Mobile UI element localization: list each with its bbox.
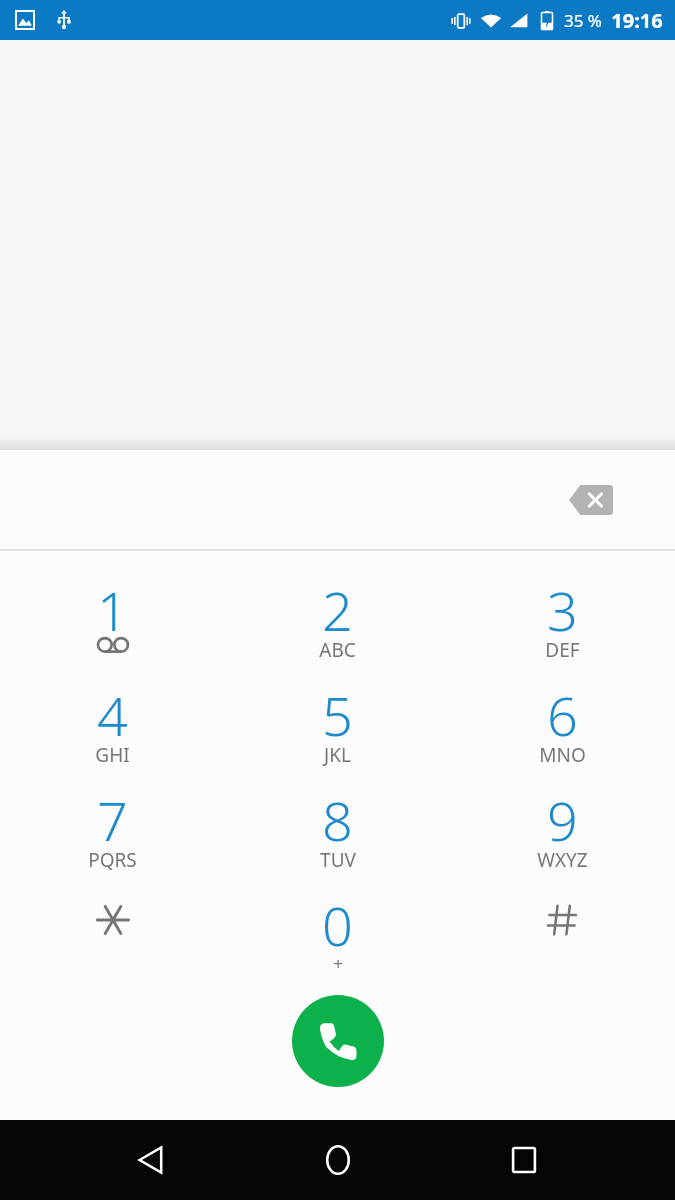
button[interactable]: Home	[302, 1124, 374, 1196]
staticText: MNO	[539, 742, 586, 768]
staticText: TUV	[320, 847, 356, 873]
button[interactable]: 4	[0, 678, 225, 783]
button[interactable]: 1	[0, 573, 225, 678]
staticText: 2	[322, 573, 353, 637]
button[interactable]: 9	[450, 783, 675, 888]
button[interactable]: 7	[0, 783, 225, 888]
staticText: 19:16	[611, 7, 663, 34]
staticText: 0	[322, 888, 353, 952]
button[interactable]: Call	[292, 995, 384, 1087]
staticText: DEF	[545, 637, 580, 663]
staticText: JKL	[324, 742, 351, 768]
staticText: 4	[97, 678, 128, 742]
staticText: +	[333, 952, 343, 975]
staticText: WXYZ	[537, 847, 588, 873]
staticText: 3	[547, 573, 578, 637]
staticText: 35 %	[564, 9, 602, 32]
button[interactable]: Back	[115, 1124, 187, 1196]
button[interactable]	[0, 888, 225, 993]
staticText: 7	[97, 783, 128, 847]
button[interactable]: 2	[225, 573, 450, 678]
staticText: PQRS	[88, 847, 137, 873]
button[interactable]: 5	[225, 678, 450, 783]
button[interactable]: Recents	[488, 1124, 560, 1196]
staticText: 5	[322, 678, 353, 742]
staticText: GHI	[95, 742, 130, 768]
button[interactable]: 8	[225, 783, 450, 888]
staticText: 6	[547, 678, 578, 742]
button[interactable]	[450, 888, 675, 993]
staticText: 1	[97, 573, 128, 637]
button[interactable]: 3	[450, 573, 675, 678]
button[interactable]: 0	[225, 888, 450, 993]
staticText: ABC	[319, 637, 356, 663]
staticText: 8	[322, 783, 353, 847]
button[interactable]: Backspace	[561, 476, 621, 524]
button[interactable]: 6	[450, 678, 675, 783]
staticText: 9	[547, 783, 578, 847]
